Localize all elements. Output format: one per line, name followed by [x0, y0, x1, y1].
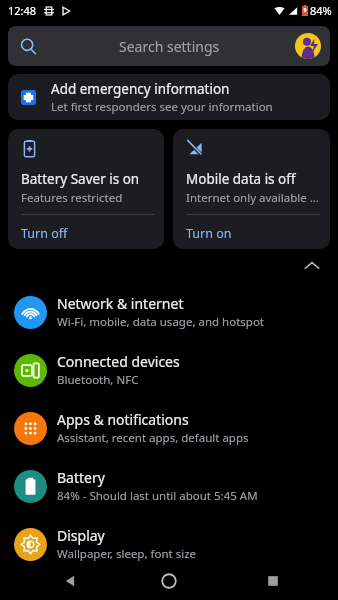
staticText: Features restricted — [21, 190, 123, 206]
button[interactable]: Battery Saver is on — [8, 129, 164, 249]
staticText: Wallpaper, sleep, font size — [57, 546, 197, 562]
button[interactable]: Account — [295, 33, 321, 59]
staticText: Turn on — [186, 225, 232, 242]
staticText: Battery Saver is on — [21, 170, 140, 188]
button[interactable]: Add emergency information — [8, 74, 330, 120]
staticText: Let first responders see your informatio… — [51, 99, 273, 115]
button[interactable]: Back — [58, 568, 84, 594]
staticText: Assistant, recent apps, default apps — [57, 430, 249, 446]
staticText: 84% - Should last until about 5:45 AM — [57, 488, 258, 504]
staticText: Search settings — [119, 37, 220, 56]
staticText: Bluetooth, NFC — [57, 372, 139, 388]
button[interactable]: Search settings — [8, 26, 330, 66]
staticText: Internet only available vi… — [186, 190, 320, 206]
button[interactable]: Battery — [0, 457, 338, 515]
staticText: Apps & notifications — [57, 410, 189, 429]
staticText: Mobile data is off — [186, 170, 296, 188]
staticText: Wi-Fi, mobile, data usage, and hotspot — [57, 314, 264, 330]
staticText: Display — [57, 526, 105, 545]
button[interactable]: Mobile data is off — [173, 129, 330, 249]
staticText: 12:48 — [8, 3, 37, 18]
button[interactable]: Apps & notifications — [0, 399, 338, 457]
button[interactable]: Connected devices — [0, 341, 338, 399]
button[interactable]: Display — [0, 515, 338, 573]
button[interactable]: Collapse — [298, 252, 326, 280]
staticText: Connected devices — [57, 352, 180, 371]
staticText: 84% — [310, 3, 332, 18]
staticText: Network & internet — [57, 294, 184, 313]
button[interactable]: Home — [156, 568, 182, 594]
staticText: Battery — [57, 468, 105, 487]
button[interactable]: Recent apps — [262, 570, 284, 592]
staticText: Add emergency information — [51, 80, 230, 98]
staticText: Turn off — [21, 225, 68, 242]
button[interactable]: Network & internet — [0, 283, 338, 341]
